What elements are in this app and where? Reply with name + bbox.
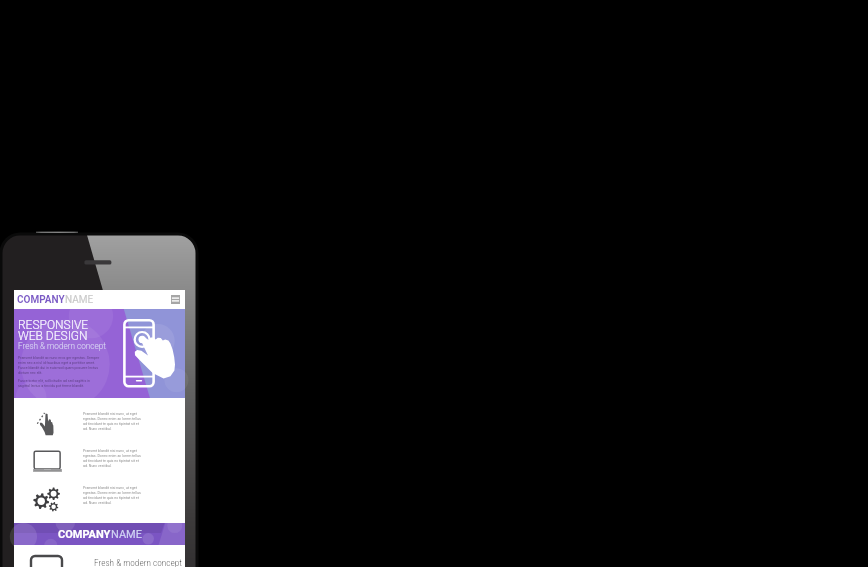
staticText: RESPONSIVE bbox=[18, 318, 89, 332]
staticText: NAME bbox=[65, 294, 94, 306]
staticText: Fusce tortor elit, sollicitudin ad sed s… bbox=[18, 379, 100, 387]
staticText: Praesent blandit nisi nunc, ut eget eges… bbox=[83, 412, 141, 431]
button[interactable]: Praesent blandit nisi nunc, ut eget eges… bbox=[14, 483, 185, 520]
staticText: Fresh & modern concept bbox=[94, 557, 182, 567]
staticText: Praesent blandit nisi nunc, ut eget eges… bbox=[83, 486, 141, 505]
button[interactable]: Praesent blandit nisi nunc, ut eget eges… bbox=[14, 409, 185, 446]
button[interactable]: Menu bbox=[169, 293, 182, 306]
staticText: COMPANY bbox=[58, 528, 111, 541]
button[interactable]: COMPANY bbox=[17, 294, 94, 306]
button[interactable]: COMPANY bbox=[14, 523, 185, 545]
staticText: Praesent blandit nisi nunc, ut eget eges… bbox=[83, 449, 141, 468]
staticText: COMPANY bbox=[17, 294, 65, 306]
staticText: NAME bbox=[111, 528, 142, 541]
button[interactable]: Praesent blandit nisi nunc, ut eget eges… bbox=[14, 446, 185, 483]
staticText: Praesent blandit ac nunc eros ger egesta… bbox=[18, 356, 100, 374]
staticText: WEB DESIGN bbox=[18, 329, 88, 343]
staticText: Fresh & modern concept bbox=[18, 341, 106, 351]
